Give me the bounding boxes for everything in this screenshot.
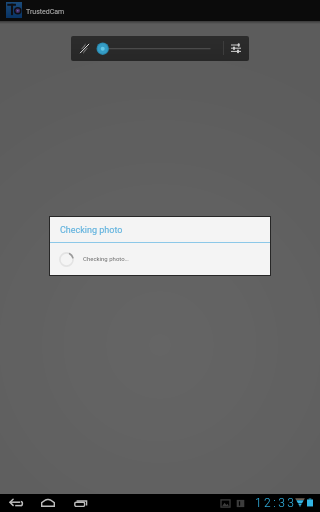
button[interactable]: Back <box>5 494 27 512</box>
button[interactable]: Recent apps <box>70 494 92 512</box>
button[interactable]: Flash off <box>71 36 96 61</box>
button[interactable]: Settings <box>223 36 247 61</box>
button[interactable]: Home <box>37 494 59 512</box>
button[interactable]: TrustedCam app icon <box>6 2 22 18</box>
staticText: Checking photo <box>60 225 123 236</box>
staticText: TrustedCam <box>26 8 65 16</box>
button[interactable]: Zoom <box>96 40 218 57</box>
staticText: 12:33 <box>255 496 297 510</box>
staticText: Checking photo… <box>83 255 129 262</box>
